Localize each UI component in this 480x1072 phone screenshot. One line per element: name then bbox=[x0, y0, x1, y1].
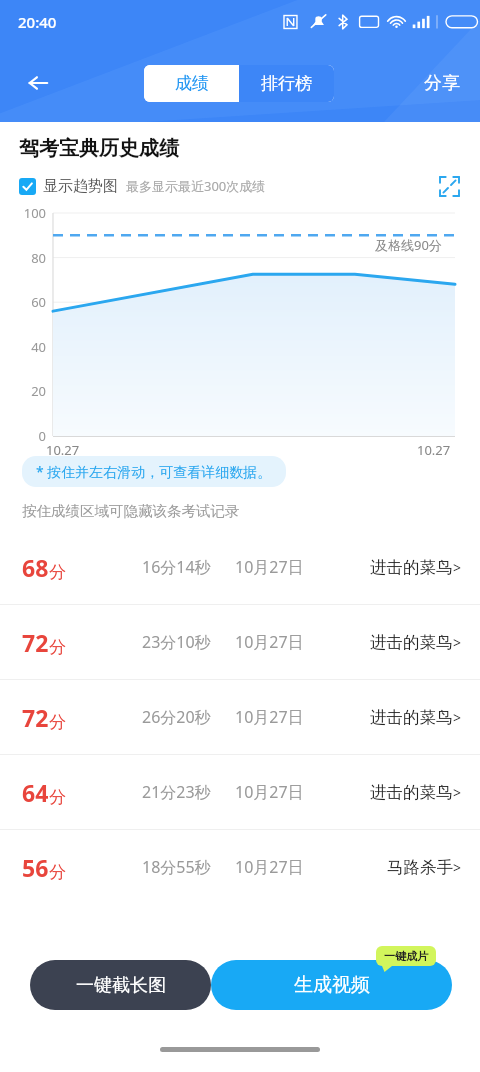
staticText: 16分14秒 bbox=[142, 556, 211, 578]
staticText: 0 bbox=[38, 427, 46, 445]
button[interactable]: 成绩 bbox=[144, 65, 239, 102]
staticText: 21分23秒 bbox=[142, 781, 211, 803]
button[interactable]: 排行榜 bbox=[239, 65, 334, 102]
button[interactable]: 68 bbox=[0, 530, 480, 604]
staticText: 显示趋势图 bbox=[43, 177, 118, 196]
staticText: 64 bbox=[22, 777, 49, 808]
staticText: 20:40 bbox=[18, 12, 57, 32]
button[interactable]: Fullscreen bbox=[434, 171, 464, 201]
staticText: > bbox=[453, 558, 462, 577]
staticText: * 按住并左右滑动，可查看详细数据。 bbox=[36, 462, 272, 481]
staticText: > bbox=[453, 633, 462, 652]
staticText: 及格线90分 bbox=[375, 236, 442, 254]
staticText: 一键截长图 bbox=[76, 974, 166, 997]
staticText: 成绩 bbox=[175, 73, 209, 94]
staticText: > bbox=[453, 858, 462, 877]
button[interactable]: 显示趋势图 bbox=[19, 177, 118, 196]
staticText: 40 bbox=[31, 338, 46, 356]
staticText: 马路杀手 bbox=[387, 857, 453, 878]
staticText: 18分55秒 bbox=[142, 856, 211, 878]
staticText: 80 bbox=[31, 249, 46, 267]
staticText: 100 bbox=[23, 204, 46, 222]
staticText: 10月27日 bbox=[235, 856, 304, 878]
button[interactable]: 生成视频 bbox=[211, 960, 452, 1010]
staticText: 进击的菜鸟 bbox=[370, 557, 453, 578]
staticText: > bbox=[453, 708, 462, 727]
staticText: 26分20秒 bbox=[142, 706, 211, 728]
staticText: 10月27日 bbox=[235, 706, 304, 728]
staticText: 按住成绩区域可隐藏该条考试记录 bbox=[22, 502, 240, 520]
staticText: 10.27 bbox=[46, 441, 80, 459]
staticText: 进击的菜鸟 bbox=[370, 707, 453, 728]
staticText: 分享 bbox=[424, 72, 460, 95]
button[interactable]: 72 bbox=[0, 680, 480, 754]
staticText: 排行榜 bbox=[261, 73, 312, 94]
staticText: 72 bbox=[22, 627, 49, 658]
staticText: 驾考宝典历史成绩 bbox=[19, 136, 179, 161]
staticText: 进击的菜鸟 bbox=[370, 782, 453, 803]
staticText: 分 bbox=[49, 562, 66, 583]
button[interactable]: 64 bbox=[0, 755, 480, 829]
staticText: 最多显示最近300次成绩 bbox=[126, 177, 266, 195]
staticText: 56 bbox=[22, 852, 49, 883]
button[interactable]: Back bbox=[16, 61, 60, 105]
staticText: 10.27 bbox=[417, 441, 451, 459]
staticText: 分 bbox=[49, 712, 66, 733]
staticText: 生成视频 bbox=[294, 973, 370, 997]
button[interactable]: 一键截长图 bbox=[30, 960, 211, 1010]
staticText: 分 bbox=[49, 862, 66, 883]
staticText: 23分10秒 bbox=[142, 631, 211, 653]
staticText: 一键成片 bbox=[384, 949, 428, 963]
staticText: 进击的菜鸟 bbox=[370, 632, 453, 653]
staticText: > bbox=[453, 783, 462, 802]
button[interactable]: 56 bbox=[0, 830, 480, 904]
staticText: 20 bbox=[31, 382, 46, 400]
staticText: 60 bbox=[31, 293, 46, 311]
staticText: 10月27日 bbox=[235, 781, 304, 803]
staticText: 分 bbox=[49, 637, 66, 658]
staticText: 68 bbox=[22, 552, 49, 583]
button[interactable]: 分享 bbox=[418, 64, 466, 103]
staticText: 10月27日 bbox=[235, 631, 304, 653]
staticText: 10月27日 bbox=[235, 556, 304, 578]
button[interactable]: 72 bbox=[0, 605, 480, 679]
staticText: 分 bbox=[49, 787, 66, 808]
staticText: 72 bbox=[22, 702, 49, 733]
